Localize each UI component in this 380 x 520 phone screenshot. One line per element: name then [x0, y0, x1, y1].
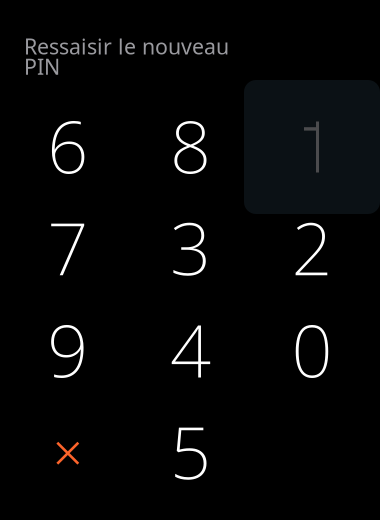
- staticText: 7: [47, 199, 88, 295]
- button[interactable]: 7: [5, 196, 131, 298]
- staticText: 2: [291, 199, 332, 295]
- button[interactable]: 0: [249, 298, 375, 400]
- staticText: 5: [170, 403, 211, 499]
- button[interactable]: 2: [249, 196, 375, 298]
- button[interactable]: 1: [248, 96, 374, 198]
- staticText: 6: [47, 98, 88, 193]
- staticText: 8: [170, 98, 211, 193]
- button[interactable]: 6: [5, 94, 131, 196]
- button[interactable]: 4: [127, 298, 253, 400]
- staticText: 0: [291, 302, 332, 397]
- staticText: 9: [47, 302, 88, 397]
- button[interactable]: Delete: [5, 402, 131, 504]
- button[interactable]: 5: [127, 400, 253, 502]
- button[interactable]: 3: [127, 196, 253, 298]
- button[interactable]: 8: [127, 94, 253, 196]
- staticText: Ressaisir le nouveau PIN: [24, 32, 229, 81]
- button[interactable]: 9: [5, 298, 131, 400]
- staticText: 3: [170, 199, 211, 295]
- staticText: 4: [170, 302, 211, 397]
